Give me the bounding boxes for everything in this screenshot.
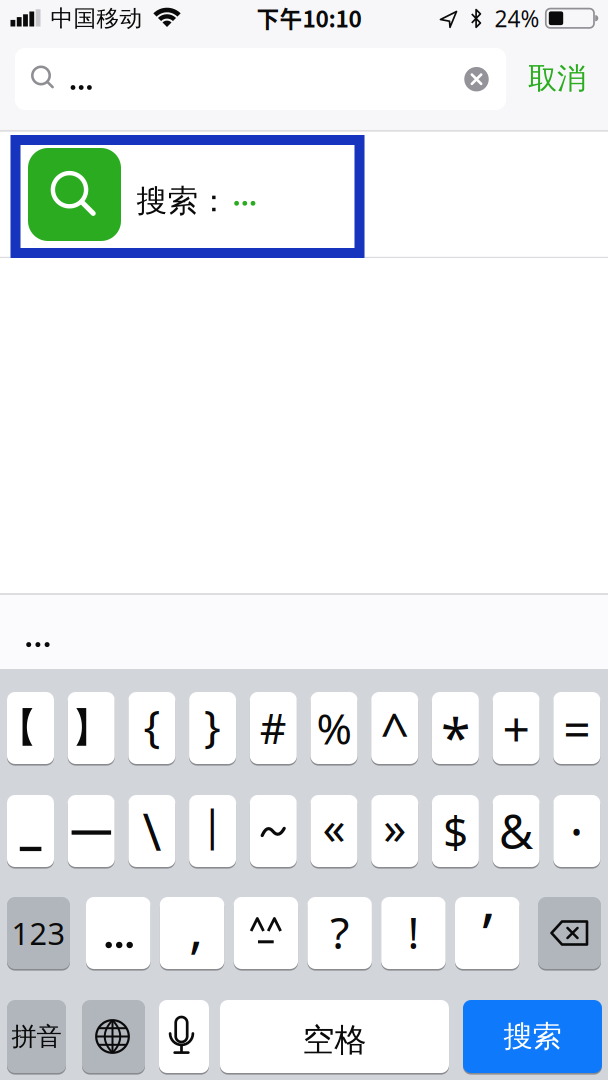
button[interactable]: ^ (371, 692, 418, 764)
button[interactable]: — (68, 795, 115, 867)
staticText: # (260, 701, 287, 755)
staticText: 拼音 (11, 1021, 61, 1052)
button[interactable]: 123 (7, 897, 70, 969)
staticText: , (189, 892, 203, 962)
staticText: ! (407, 903, 419, 961)
button[interactable]: | (189, 795, 236, 867)
staticText: % (316, 700, 351, 756)
staticText: 取消 (528, 60, 586, 96)
button[interactable]: $ (432, 795, 479, 867)
staticText: 【 (0, 703, 37, 752)
button[interactable]: 搜索： (10, 135, 364, 258)
staticText: » (383, 797, 406, 857)
button[interactable]: 候选词 … (8, 615, 68, 675)
staticText: 搜索 (503, 1018, 561, 1054)
button[interactable]: \ (128, 795, 175, 867)
staticText: = (563, 696, 590, 760)
button[interactable]: 】 (68, 692, 115, 764)
button[interactable]: { (128, 692, 175, 764)
button[interactable]: , (160, 897, 224, 969)
button[interactable]: 表情符号 (234, 897, 298, 969)
staticText: ? (330, 903, 349, 961)
staticText: 下午10:10 (256, 1, 361, 33)
staticText: { (143, 696, 160, 754)
button[interactable]: % (310, 692, 357, 764)
staticText: & (499, 800, 533, 862)
staticText: } (204, 696, 221, 754)
button[interactable]: 搜索 (463, 1000, 602, 1073)
button[interactable]: } (189, 692, 236, 764)
button[interactable]: 拼音 (7, 1000, 66, 1073)
button[interactable]: _ (7, 795, 54, 867)
button[interactable]: + (493, 692, 540, 764)
button[interactable]: = (553, 692, 600, 764)
staticText: $ (443, 802, 468, 860)
staticText: 中国移动 (50, 5, 142, 32)
button[interactable]: * (432, 692, 479, 764)
button[interactable]: & (493, 795, 540, 867)
button[interactable]: ? (307, 897, 372, 969)
button[interactable]: … (86, 897, 150, 969)
staticText: 空格 (302, 1020, 366, 1060)
staticText: | (201, 796, 225, 852)
button[interactable]: 清除文本 (464, 67, 489, 91)
button[interactable]: 删除 (538, 897, 601, 969)
staticText: 】 (71, 703, 111, 752)
button[interactable]: 搜索 (15, 48, 506, 110)
button[interactable]: « (310, 795, 357, 867)
staticText: 24% (494, 3, 539, 33)
button[interactable]: · (553, 795, 600, 867)
button[interactable]: ~ (250, 795, 297, 867)
button[interactable]: 听写 (159, 1000, 209, 1073)
staticText: 123 (11, 913, 65, 953)
staticText: ’ (482, 894, 492, 972)
button[interactable]: 【 (7, 692, 54, 764)
button[interactable]: 下一个键盘 (82, 1000, 145, 1073)
button[interactable]: 空格 (220, 1000, 449, 1073)
staticText: * (441, 701, 470, 771)
staticText: ^ (380, 697, 409, 765)
staticText: « (322, 797, 345, 857)
staticText: + (503, 696, 530, 760)
button[interactable]: ! (381, 897, 446, 969)
button[interactable]: ’ (455, 897, 519, 969)
button[interactable]: 取消 (522, 58, 592, 98)
button[interactable]: » (371, 795, 418, 867)
button[interactable]: # (250, 692, 297, 764)
staticText: 搜索： (136, 182, 229, 220)
staticText: \ (142, 797, 161, 865)
staticText: · (570, 797, 584, 865)
